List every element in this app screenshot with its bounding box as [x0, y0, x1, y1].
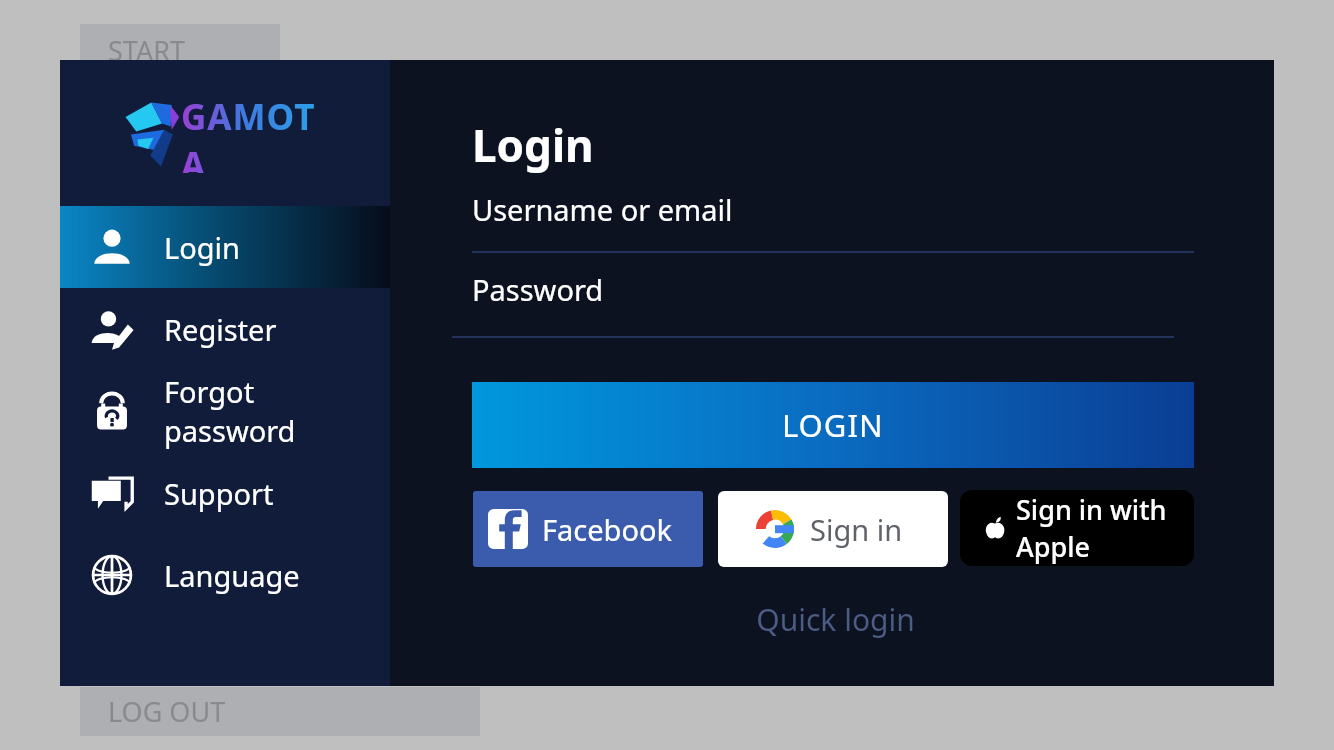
staticText: LOGIN [782, 404, 884, 446]
staticText: Sign in [810, 510, 903, 549]
staticText: Facebook [542, 510, 673, 549]
staticText: Login [164, 228, 240, 267]
staticText: START [108, 32, 186, 69]
staticText: Sign in with Apple [1016, 491, 1194, 565]
staticText: Support [164, 474, 274, 513]
button[interactable]: Username or email [472, 190, 1194, 253]
staticText: Login [472, 115, 594, 175]
staticText: Username or email [472, 190, 733, 229]
button[interactable]: Sign in with Apple [960, 490, 1194, 566]
button[interactable]: START [80, 24, 280, 76]
button[interactable]: LOGIN [472, 382, 1194, 468]
button[interactable]: Sign in [718, 491, 948, 567]
staticText: Register [164, 310, 277, 349]
staticText: Forgot password [164, 372, 390, 450]
button[interactable]: Forgot password [60, 370, 390, 452]
button[interactable]: LOG OUT [80, 687, 480, 736]
button[interactable]: Language [60, 534, 390, 616]
button[interactable]: Login [60, 206, 390, 288]
button[interactable]: Facebook [473, 491, 703, 567]
staticText: LOG OUT [108, 693, 226, 730]
staticText: GAMOTA [181, 93, 333, 173]
button[interactable]: Password [452, 270, 1174, 338]
button[interactable]: Support [60, 452, 390, 534]
staticText: Language [164, 556, 300, 595]
button[interactable]: Register [60, 288, 390, 370]
staticText: Password [472, 270, 604, 309]
button[interactable]: Quick login [690, 597, 980, 641]
staticText: Quick login [756, 599, 915, 640]
